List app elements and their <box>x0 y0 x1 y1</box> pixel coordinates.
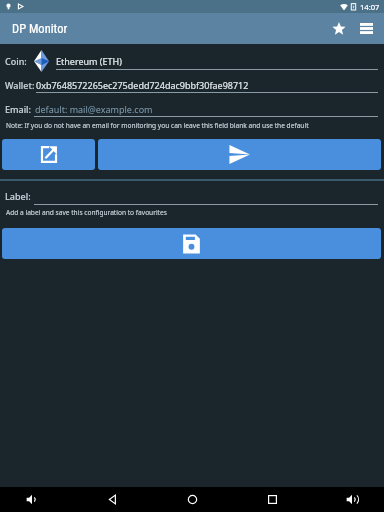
button[interactable]: Recents <box>256 487 288 512</box>
button[interactable]: Volume down <box>16 487 48 512</box>
staticText: default: mail@example.com <box>35 103 153 115</box>
button[interactable]: Send <box>98 139 381 170</box>
button[interactable]: Volume up <box>336 487 368 512</box>
staticText: Email: <box>5 103 31 115</box>
staticText: Wallet: <box>5 79 35 91</box>
staticText: Add a label and save this configuration … <box>6 208 167 217</box>
staticText: Coin: <box>5 55 27 67</box>
button[interactable]: Open in explorer <box>2 139 95 170</box>
button[interactable]: Back <box>96 487 128 512</box>
staticText: 14:07 <box>360 2 380 12</box>
button[interactable]: Save <box>2 228 381 259</box>
staticText: Label: <box>5 190 31 202</box>
button[interactable]: Home <box>176 487 208 512</box>
staticText: 0xb7648572265ec275dedd724dac9bbf30fae987… <box>36 79 249 91</box>
staticText: Note: If you do not have an email for mo… <box>6 121 309 130</box>
staticText: DP Monitor <box>12 21 68 36</box>
staticText: Ethereum (ETH) <box>56 55 122 67</box>
button[interactable]: Menu <box>353 13 380 44</box>
button[interactable]: Favourites <box>324 13 353 44</box>
